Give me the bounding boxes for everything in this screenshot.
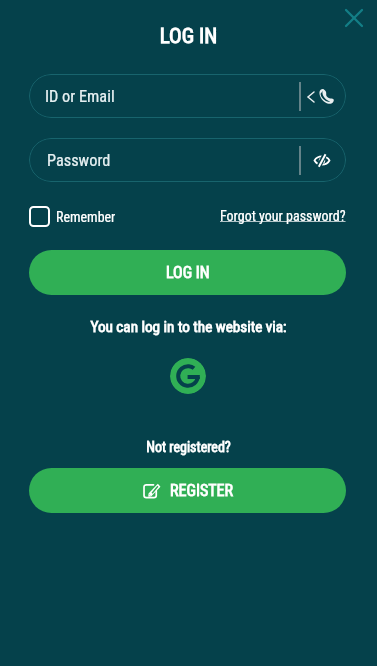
button[interactable]: ID or Email: [29, 74, 346, 118]
staticText: LOG IN: [166, 263, 210, 282]
button[interactable]: Select country code: [303, 89, 319, 105]
button[interactable]: Forgot your password?: [220, 208, 346, 224]
staticText: LOG IN: [0, 24, 377, 49]
staticText: Remember: [56, 209, 116, 225]
button[interactable]: Log in with Google: [170, 358, 206, 394]
staticText: You can log in to the website via:: [0, 318, 377, 336]
button[interactable]: REGISTER: [29, 468, 346, 513]
staticText: Forgot your password?: [220, 208, 346, 224]
button[interactable]: Password: [29, 138, 346, 182]
staticText: REGISTER: [170, 481, 233, 500]
staticText: Not registered?: [0, 439, 377, 455]
button[interactable]: Close: [337, 1, 371, 35]
button[interactable]: LOG IN: [29, 250, 346, 295]
button[interactable]: Show password: [307, 145, 337, 175]
staticText: ID or Email: [45, 87, 115, 106]
staticText: Password: [47, 151, 111, 170]
button[interactable]: Remember: [29, 206, 116, 227]
